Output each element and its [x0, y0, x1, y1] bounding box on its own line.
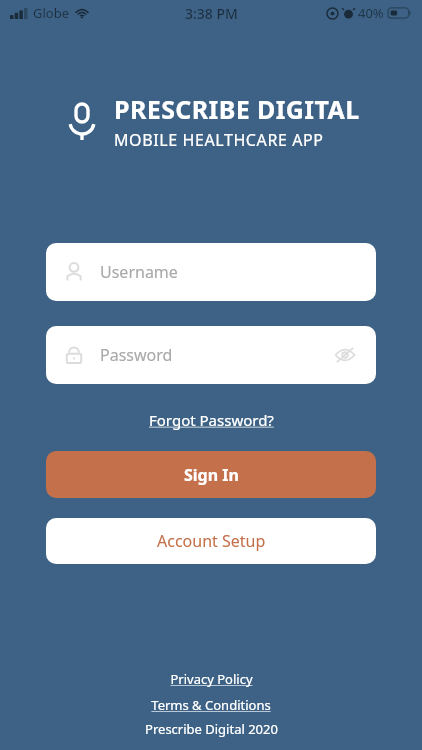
staticText: Prescribe Digital 2020 — [145, 720, 278, 738]
staticText: Globe — [33, 4, 70, 22]
button[interactable]: Username — [46, 243, 376, 301]
button[interactable]: Show password — [332, 342, 358, 368]
staticText: 40% — [358, 4, 384, 22]
staticText: Password — [100, 344, 332, 366]
button[interactable]: Sign In — [46, 451, 376, 498]
button[interactable]: Password — [46, 326, 376, 384]
staticText: PRESCRIBE DIGITAL — [114, 92, 360, 126]
staticText: MOBILE HEALTHCARE APP — [114, 129, 324, 151]
button[interactable]: Privacy Policy — [164, 668, 259, 690]
button[interactable]: Terms & Conditions — [145, 694, 277, 716]
button[interactable]: Forgot Password? — [145, 406, 278, 434]
button[interactable]: Account Setup — [46, 518, 376, 564]
staticText: Sign In — [184, 464, 239, 486]
staticText: Username — [100, 261, 178, 283]
staticText: 3:38 PM — [185, 4, 238, 23]
staticText: Account Setup — [157, 530, 266, 552]
